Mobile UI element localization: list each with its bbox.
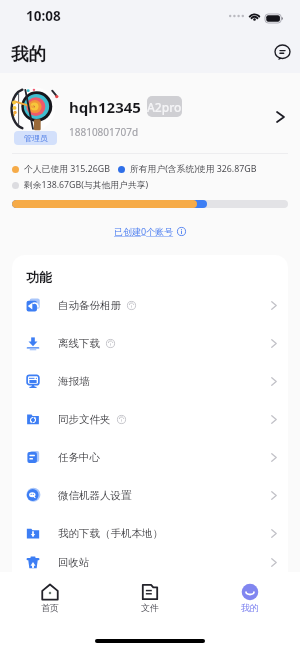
staticText: 剩余138.67GB(与其他用户共享) xyxy=(24,179,149,191)
staticText: 文件 xyxy=(141,602,159,613)
staticText: 任务中心 xyxy=(58,451,100,464)
staticText: 回收站 xyxy=(58,556,90,569)
button[interactable]: 我的下载（手机本地） xyxy=(12,514,288,552)
staticText: 管理员 xyxy=(24,133,48,143)
staticText: 我的 xyxy=(11,43,46,65)
staticText: 所有用户(含系统)使用 326.87GB xyxy=(130,163,257,175)
staticText: 18810801707d xyxy=(69,125,139,139)
staticText: 功能 xyxy=(26,269,52,285)
staticText: hqh12345 xyxy=(69,97,141,117)
button[interactable]: 管理员 xyxy=(0,85,300,149)
staticText: 首页 xyxy=(41,602,59,613)
staticText: 我的 xyxy=(241,602,259,613)
button[interactable]: 微信机器人设置 xyxy=(12,476,288,514)
staticText: 微信机器人设置 xyxy=(58,489,132,502)
button[interactable]: Feedback xyxy=(269,39,295,65)
staticText: 自动备份相册 xyxy=(58,299,121,312)
staticText: 海报墙 xyxy=(58,375,90,388)
button[interactable]: 海报墙 xyxy=(12,362,288,400)
staticText: 我的下载（手机本地） xyxy=(58,527,163,540)
button[interactable]: 回收站 xyxy=(12,552,288,572)
staticText: 个人已使用 315.26GB xyxy=(24,163,110,175)
staticText: 已创建0个账号 xyxy=(114,225,174,237)
staticText: 离线下载 xyxy=(58,337,100,350)
button[interactable]: 首页 xyxy=(0,574,100,622)
button[interactable]: 文件 xyxy=(100,574,200,622)
button[interactable]: 任务中心 xyxy=(12,438,288,476)
staticText: 同步文件夹 xyxy=(58,413,111,426)
button[interactable]: 离线下载 xyxy=(12,324,288,362)
button[interactable]: 已创建0个账号 xyxy=(12,225,288,237)
staticText: 10:08 xyxy=(26,7,61,25)
button[interactable]: 同步文件夹 xyxy=(12,400,288,438)
button[interactable]: 自动备份相册 xyxy=(12,286,288,324)
staticText: A2pro xyxy=(147,99,182,115)
button[interactable]: 我的 xyxy=(200,574,300,622)
